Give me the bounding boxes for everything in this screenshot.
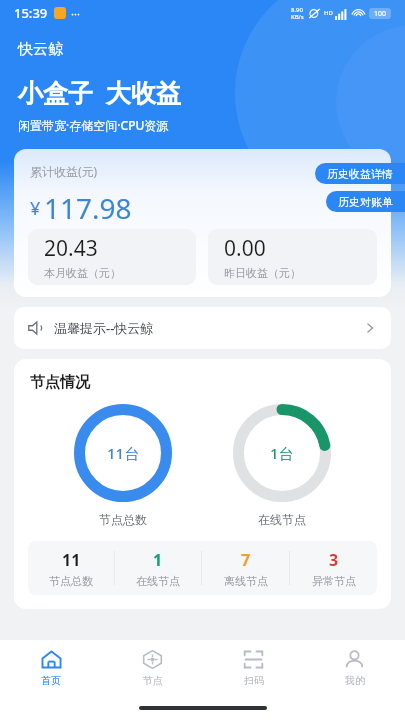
staticText: 7: [241, 549, 251, 571]
button[interactable]: 1台: [233, 404, 331, 527]
staticText: ···: [71, 6, 80, 21]
staticText: 异常节点: [312, 574, 356, 588]
button[interactable]: 1: [115, 541, 201, 595]
staticText: 节点: [143, 674, 163, 687]
staticText: ¥: [30, 196, 41, 221]
staticText: HD: [324, 9, 333, 17]
staticText: 昨日收益（元）: [224, 266, 301, 280]
staticText: 在线节点: [136, 574, 180, 588]
staticText: 小盒子 大收益: [18, 75, 182, 109]
button[interactable]: 扫码: [203, 640, 304, 696]
staticText: 11: [62, 549, 81, 571]
button[interactable]: 温馨提示--快云鲸: [14, 307, 391, 349]
staticText: 20.43: [44, 234, 98, 263]
button[interactable]: 11台: [74, 404, 172, 527]
staticText: 3: [329, 549, 339, 571]
button[interactable]: 首页: [0, 640, 102, 696]
staticText: 本月收益（元）: [44, 266, 121, 280]
button[interactable]: 累计收益(元): [14, 149, 391, 297]
staticText: 扫码: [244, 674, 264, 687]
button[interactable]: 历史对账单: [326, 191, 405, 212]
staticText: 快云鲸: [18, 40, 63, 59]
staticText: 闲置带宽·存储空间·CPU资源: [18, 117, 169, 133]
button[interactable]: 7: [202, 541, 289, 595]
staticText: 节点情况: [30, 373, 90, 392]
staticText: 在线节点: [258, 512, 306, 527]
staticText: 首页: [41, 674, 61, 687]
staticText: 117.98: [44, 189, 132, 227]
button[interactable]: 历史收益详情: [315, 163, 405, 184]
staticText: 8.90 KB/s: [291, 6, 304, 21]
staticText: 我的: [345, 674, 365, 687]
button[interactable]: 3: [290, 541, 377, 595]
staticText: 11台: [107, 443, 140, 463]
staticText: 节点总数: [99, 512, 147, 527]
button[interactable]: 11: [28, 541, 114, 595]
staticText: 1: [153, 549, 163, 571]
staticText: 100: [374, 9, 387, 19]
button[interactable]: 20.43: [28, 229, 196, 285]
staticText: 0.00: [224, 234, 266, 263]
button[interactable]: 节点: [102, 640, 203, 696]
staticText: 温馨提示--快云鲸: [54, 319, 154, 337]
staticText: 离线节点: [224, 574, 268, 588]
staticText: 15:39: [14, 4, 48, 22]
staticText: 1台: [270, 443, 294, 463]
staticText: 历史收益详情: [327, 167, 393, 181]
staticText: 累计收益(元): [30, 163, 98, 179]
staticText: 节点总数: [49, 574, 93, 588]
button[interactable]: 我的: [304, 640, 405, 696]
staticText: 历史对账单: [338, 195, 393, 209]
button[interactable]: 0.00: [208, 229, 377, 285]
